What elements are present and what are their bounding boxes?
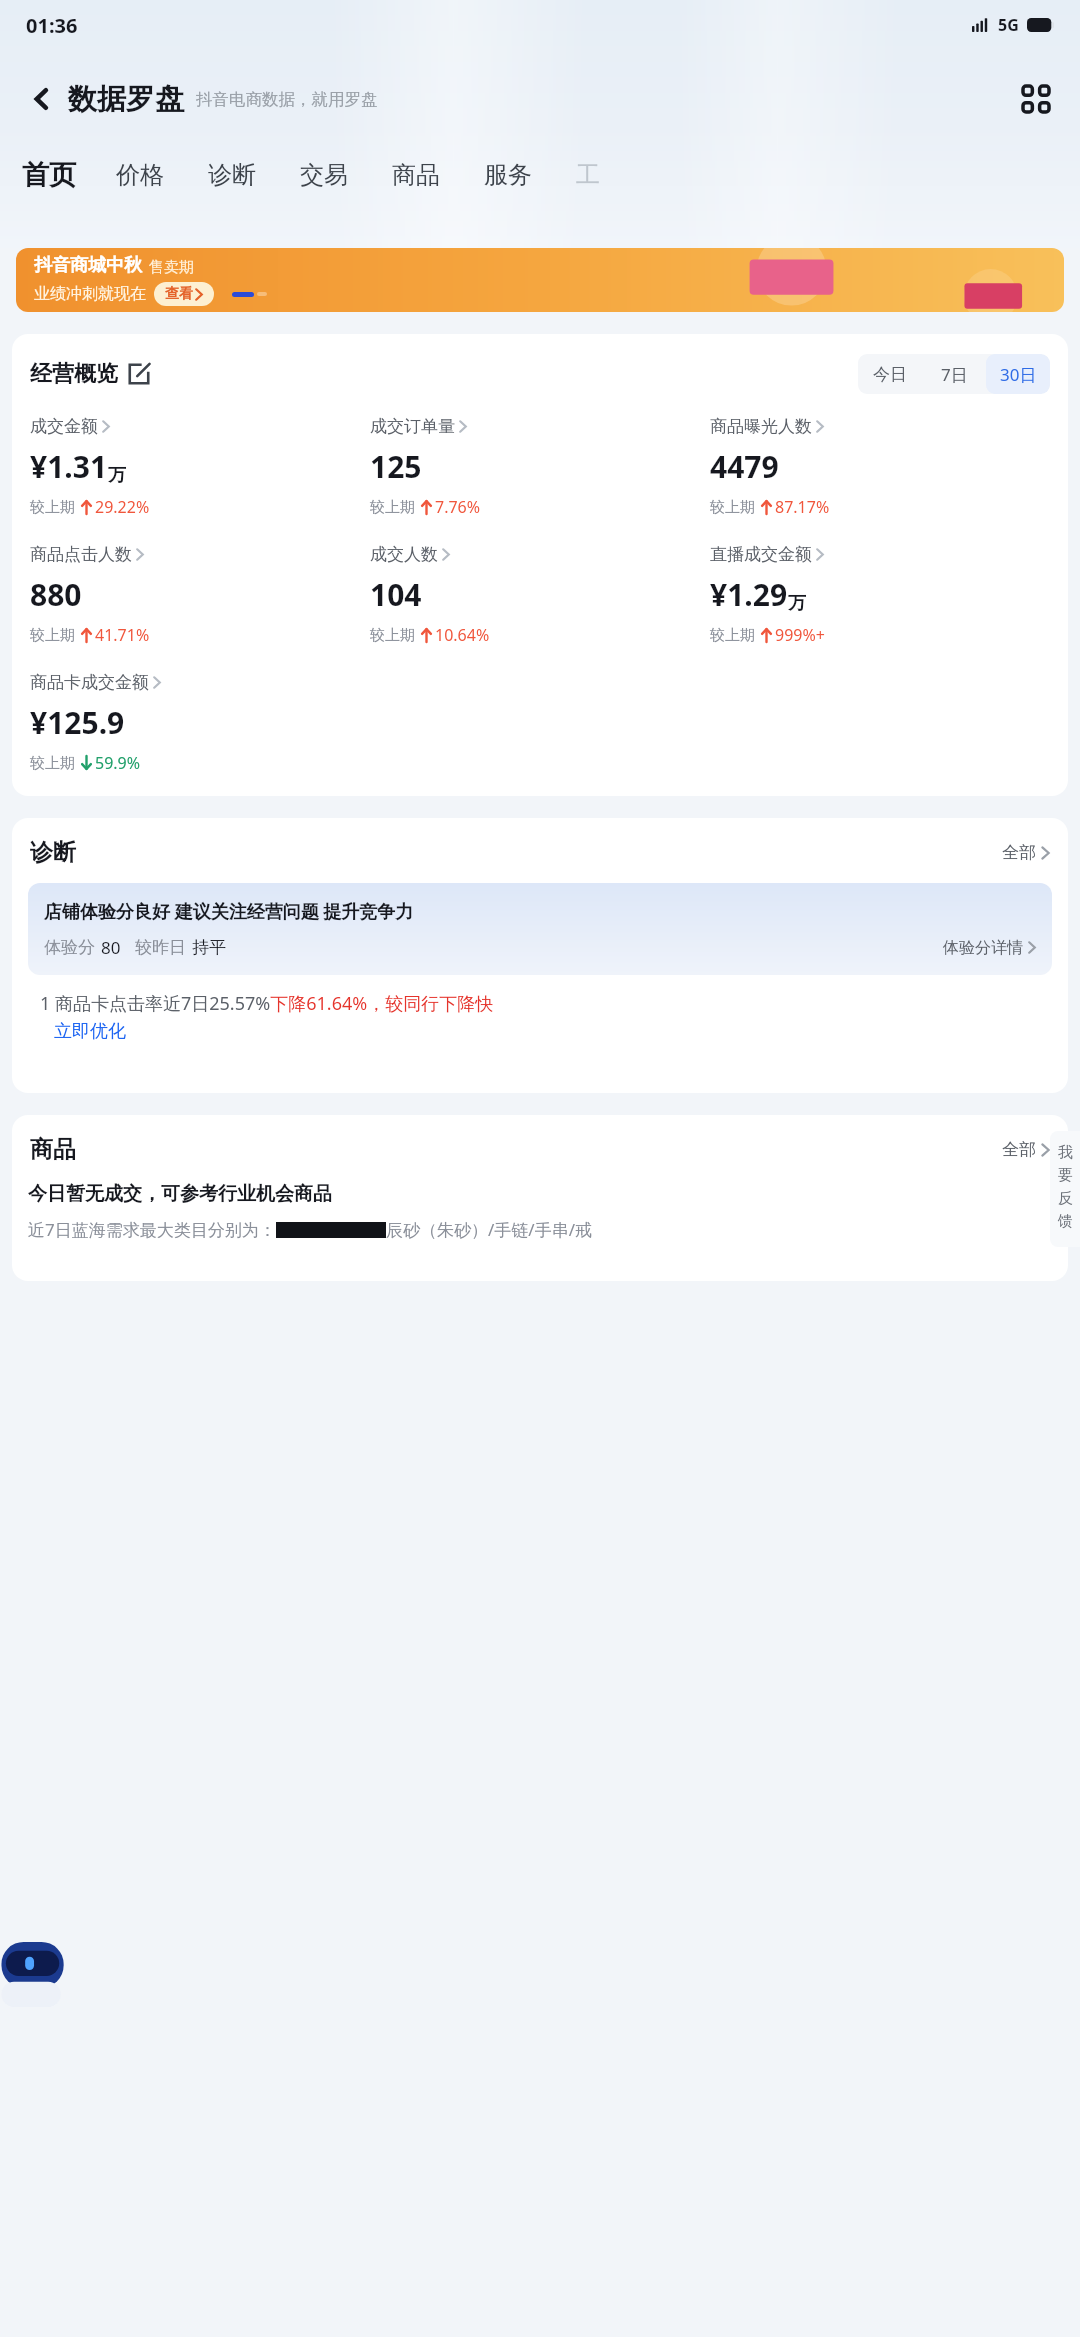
staticText: 售卖期 bbox=[149, 258, 194, 277]
staticText: 店铺体验分良好 建议关注经营问题 提升竞争力 bbox=[44, 899, 414, 924]
staticText: 近7日蓝海需求最大类目分别为： bbox=[28, 1218, 276, 1241]
staticText: 全部 bbox=[1002, 842, 1036, 863]
staticText: 诊断 bbox=[30, 838, 76, 867]
staticText: 商品 bbox=[30, 1135, 76, 1164]
staticText: 较上期 bbox=[710, 498, 755, 517]
staticText: 7日 bbox=[941, 363, 968, 386]
staticText: 104 bbox=[370, 574, 422, 615]
button[interactable]: 商品点击人数 bbox=[30, 544, 150, 646]
button[interactable]: 7日 bbox=[922, 354, 986, 394]
button[interactable]: Back bbox=[22, 79, 62, 119]
staticText: 今日暂无成交，可参考行业机会商品 bbox=[28, 1182, 332, 1206]
staticText: 直播成交金额 bbox=[710, 544, 812, 565]
staticText: 业绩冲刺就现在 bbox=[34, 284, 146, 304]
staticText: 万 bbox=[108, 464, 126, 487]
staticText: 抖音电商数据，就用罗盘 bbox=[196, 89, 378, 110]
staticText: ¥1.29 bbox=[710, 574, 788, 615]
button[interactable]: 今日 bbox=[858, 354, 922, 394]
staticText: 01:36 bbox=[26, 12, 78, 39]
staticText: 4479 bbox=[710, 446, 779, 487]
button[interactable]: 查看 bbox=[165, 285, 203, 303]
staticText: 商品 bbox=[392, 160, 440, 190]
staticText: 立即优化 bbox=[54, 1020, 126, 1043]
button[interactable]: Edit bbox=[128, 363, 150, 385]
staticText: 87.17% bbox=[775, 496, 830, 518]
button[interactable]: Menu bbox=[1014, 77, 1058, 121]
staticText: ¥125.9 bbox=[30, 702, 125, 743]
staticText: 999%+ bbox=[775, 624, 825, 646]
staticText: 125 bbox=[370, 446, 422, 487]
staticText: 辰砂（朱砂）/手链/手串/戒 bbox=[386, 1218, 592, 1241]
button[interactable]: 立即优化 bbox=[54, 1020, 126, 1043]
staticText: 商品曝光人数 bbox=[710, 416, 812, 437]
staticText: 成交订单量 bbox=[370, 416, 455, 437]
staticText: 较上期 bbox=[370, 498, 415, 517]
button[interactable]: 抖音商城中秋 bbox=[16, 248, 1064, 312]
staticText: 全部 bbox=[1002, 1139, 1036, 1160]
staticText: 首页 bbox=[22, 158, 76, 192]
staticText: 1 商品卡点击率近7日25.57%下降61.64%，较同行下降快 bbox=[40, 991, 494, 1016]
staticText: 经营概览 bbox=[30, 360, 118, 388]
staticText: 成交人数 bbox=[370, 544, 438, 565]
staticText: 80 bbox=[101, 936, 121, 959]
button[interactable]: 诊断 bbox=[208, 160, 300, 190]
staticText: 交易 bbox=[300, 160, 348, 190]
staticText: 服务 bbox=[484, 160, 532, 190]
button[interactable]: 首页 bbox=[22, 158, 116, 192]
staticText: 抖音商城中秋 bbox=[34, 254, 142, 277]
staticText: 馈 bbox=[1058, 1212, 1073, 1231]
staticText: 7.76% bbox=[435, 496, 481, 518]
staticText: 反 bbox=[1058, 1189, 1073, 1208]
staticText: 59.9% bbox=[95, 752, 141, 774]
staticText: 880 bbox=[30, 574, 82, 615]
staticText: 我 bbox=[1058, 1143, 1073, 1162]
button[interactable]: 商品曝光人数 bbox=[710, 416, 830, 518]
button[interactable]: 成交人数 bbox=[370, 544, 490, 646]
staticText: 较上期 bbox=[710, 626, 755, 645]
button[interactable]: 商品 bbox=[392, 160, 484, 190]
staticText: 工 bbox=[576, 160, 600, 190]
staticText: 体验分详情 bbox=[943, 938, 1023, 958]
button[interactable]: 全部 bbox=[1002, 842, 1050, 863]
staticText: ¥1.31 bbox=[30, 446, 108, 487]
button[interactable]: 我 bbox=[1050, 1131, 1080, 1247]
staticText: 诊断 bbox=[208, 160, 256, 190]
button[interactable]: 1 商品卡点击率近7日25.57%下降61.64%，较同行下降快 bbox=[40, 991, 494, 1043]
staticText: 41.71% bbox=[95, 624, 150, 646]
button[interactable]: 价格 bbox=[116, 160, 208, 190]
staticText: 万 bbox=[788, 592, 806, 615]
staticText: 较上期 bbox=[30, 754, 75, 773]
staticText: 数据罗盘 bbox=[68, 81, 184, 118]
button[interactable]: 交易 bbox=[300, 160, 392, 190]
staticText: 较上期 bbox=[30, 626, 75, 645]
button[interactable]: 成交订单量 bbox=[370, 416, 481, 518]
staticText: 30日 bbox=[1000, 363, 1037, 386]
staticText: 较上期 bbox=[370, 626, 415, 645]
staticText: 商品卡成交金额 bbox=[30, 672, 149, 693]
button[interactable]: 商品卡成交金额 bbox=[30, 672, 161, 774]
staticText: 5G bbox=[998, 14, 1019, 36]
staticText: 持平 bbox=[192, 937, 226, 958]
staticText: 成交金额 bbox=[30, 416, 98, 437]
staticText: 查看 bbox=[165, 285, 193, 303]
staticText: 10.64% bbox=[435, 624, 490, 646]
button[interactable]: 30日 bbox=[986, 354, 1050, 394]
staticText: 较昨日 bbox=[135, 937, 186, 958]
button[interactable]: 服务 bbox=[484, 160, 576, 190]
button[interactable]: 成交金额 bbox=[30, 416, 150, 518]
staticText: 今日 bbox=[873, 364, 907, 385]
staticText: 体验分 bbox=[44, 937, 95, 958]
button[interactable]: 直播成交金额 bbox=[710, 544, 825, 646]
staticText: 29.22% bbox=[95, 496, 150, 518]
button[interactable]: 全部 bbox=[1002, 1139, 1050, 1160]
button[interactable]: 店铺体验分良好 建议关注经营问题 提升竞争力 bbox=[28, 883, 1052, 975]
staticText: 价格 bbox=[116, 160, 164, 190]
staticText: 较上期 bbox=[30, 498, 75, 517]
staticText: 要 bbox=[1058, 1166, 1073, 1185]
staticText: 商品点击人数 bbox=[30, 544, 132, 565]
button[interactable]: Assistant bbox=[0, 1933, 74, 2007]
